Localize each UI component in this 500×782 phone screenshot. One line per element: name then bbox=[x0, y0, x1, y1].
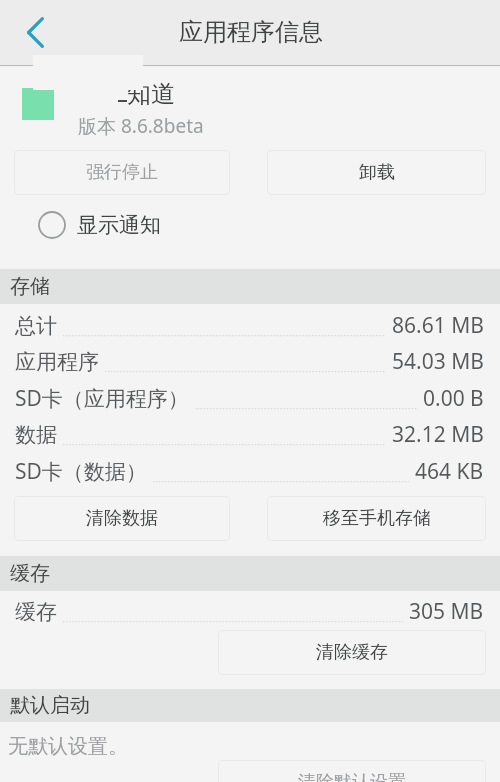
button[interactable]: 显示通知 bbox=[0, 200, 500, 250]
staticText: 无默认设置。 bbox=[8, 734, 128, 759]
button[interactable]: 移至手机存储 bbox=[267, 496, 486, 541]
staticText: 缓存 bbox=[10, 561, 50, 586]
staticText: 卸载 bbox=[359, 161, 395, 184]
staticText: 数据 bbox=[15, 422, 57, 448]
staticText: 移至手机存储 bbox=[323, 507, 431, 530]
button[interactable]: 强行停止 bbox=[14, 150, 230, 195]
staticText: 显示通知 bbox=[77, 212, 161, 238]
staticText: 默认启动 bbox=[10, 693, 90, 718]
staticText: SD卡（数据） bbox=[15, 457, 147, 486]
staticText: 32.12 MB bbox=[392, 420, 484, 449]
staticText: 清除缓存 bbox=[316, 641, 388, 664]
button[interactable]: 清除默认设置 bbox=[218, 760, 486, 782]
staticText: 应用程序 bbox=[15, 349, 99, 375]
staticText: 缓存 bbox=[15, 599, 57, 625]
staticText: 86.61 MB bbox=[392, 311, 484, 340]
staticText: 清除默认设置 bbox=[298, 771, 406, 782]
button[interactable]: 清除缓存 bbox=[218, 630, 486, 675]
staticText: 知道 bbox=[127, 79, 175, 109]
staticText: 305 MB bbox=[409, 597, 484, 626]
staticText: 0.00 B bbox=[423, 384, 484, 413]
staticText: 总计 bbox=[15, 313, 57, 339]
staticText: 464 KB bbox=[415, 457, 484, 486]
staticText: 版本 8.6.8beta bbox=[78, 113, 204, 139]
button[interactable]: Back bbox=[0, 0, 68, 65]
staticText: 清除数据 bbox=[86, 507, 158, 530]
staticText: 强行停止 bbox=[86, 161, 158, 184]
staticText: 应用程序信息 bbox=[179, 17, 323, 47]
button[interactable]: 卸载 bbox=[267, 150, 486, 195]
staticText: 存储 bbox=[10, 274, 50, 299]
button[interactable]: 清除数据 bbox=[14, 496, 230, 541]
staticText: SD卡（应用程序） bbox=[15, 384, 189, 413]
staticText: 54.03 MB bbox=[392, 347, 484, 376]
